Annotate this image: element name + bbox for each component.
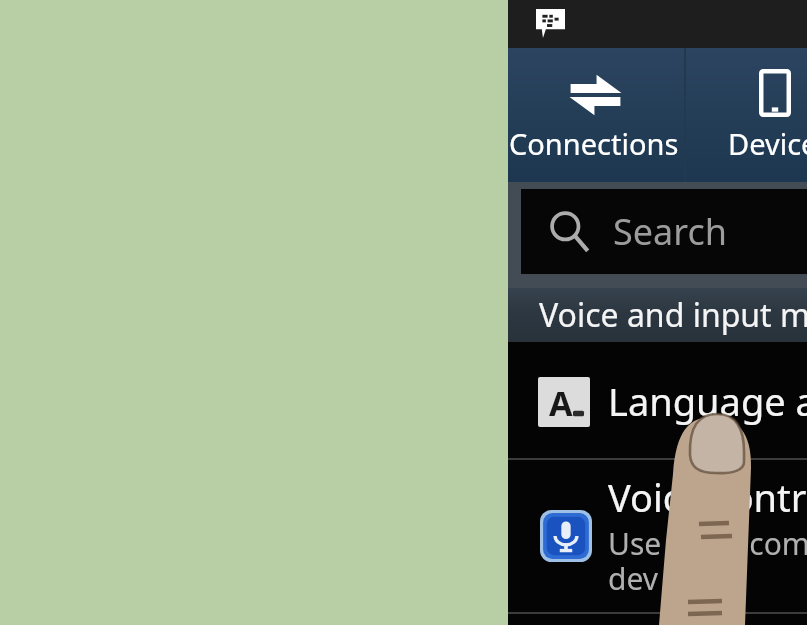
staticText: Connections xyxy=(509,124,679,163)
staticText: Use voice comma xyxy=(608,523,807,564)
button[interactable]: A xyxy=(508,342,807,458)
staticText: Device xyxy=(728,124,807,163)
button[interactable]: Voice contro xyxy=(508,460,807,612)
staticText: dev xyxy=(608,558,659,599)
staticText: Voice and input me xyxy=(539,293,807,337)
other: Messages xyxy=(536,9,565,38)
staticText: Language an xyxy=(608,375,807,427)
staticText: Voice contro xyxy=(608,471,807,523)
other: Connections xyxy=(569,74,622,116)
staticText: A xyxy=(549,380,573,426)
other: Search xyxy=(549,210,593,254)
staticText: Search xyxy=(613,207,727,256)
button[interactable]: Search xyxy=(521,189,807,274)
button[interactable]: Device xyxy=(686,48,807,182)
button[interactable]: Connections xyxy=(419,48,718,182)
other: Device xyxy=(759,69,791,117)
